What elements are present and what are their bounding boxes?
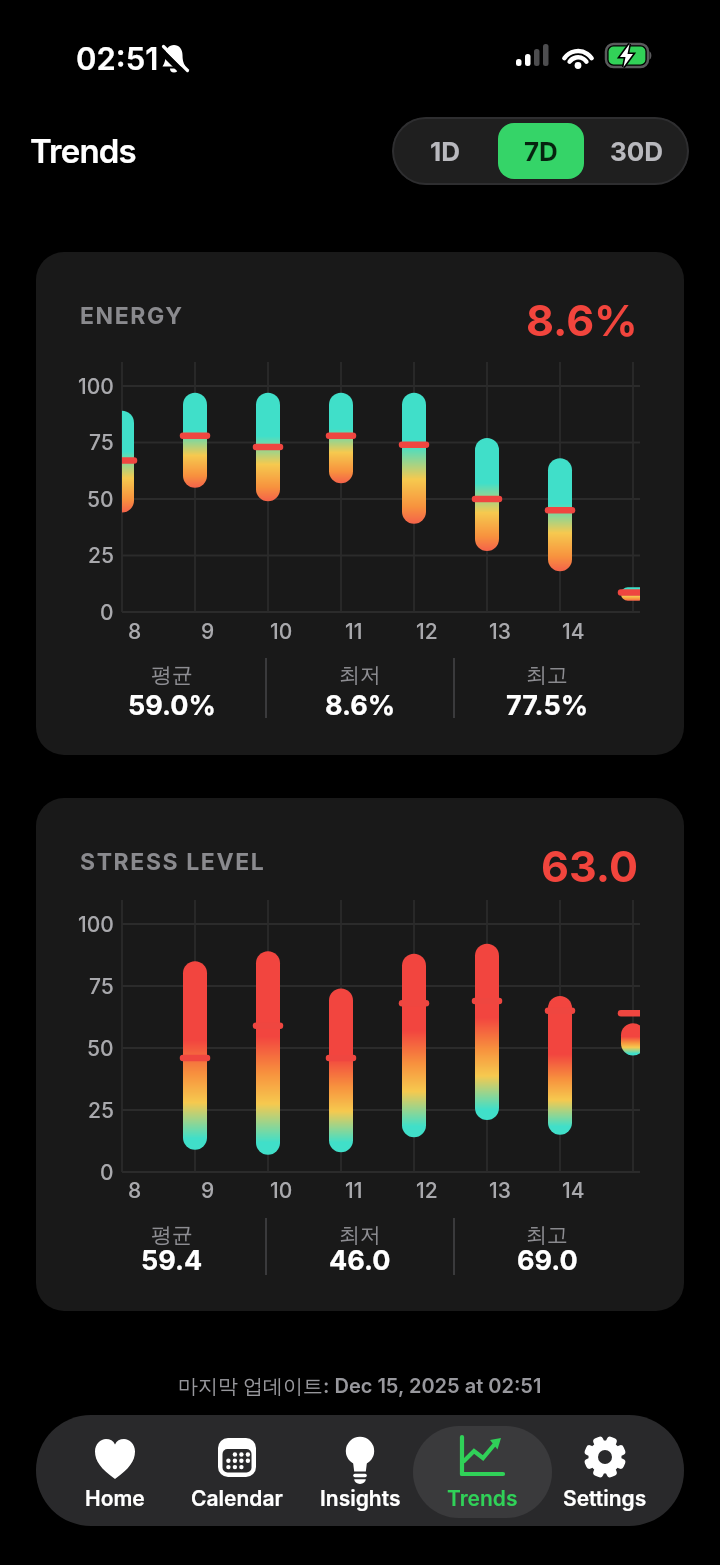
staticText: 12 (416, 1178, 438, 1203)
staticText: 10 (270, 1178, 293, 1203)
staticText: 69.0 (517, 1244, 578, 1274)
staticText: 최고 (526, 662, 568, 688)
staticText: Trends (447, 1486, 518, 1511)
staticText: 최고 (526, 1222, 568, 1248)
staticText: 0 (100, 600, 114, 625)
staticText: 46.0 (329, 1244, 391, 1274)
staticText: Trends (30, 131, 136, 171)
staticText: 8 (128, 619, 142, 644)
staticText: 14 (562, 1178, 585, 1203)
staticText: 7D (524, 136, 558, 167)
button[interactable]: Trends (421, 1415, 543, 1526)
button[interactable]: STRESS LEVEL (36, 798, 684, 1311)
staticText: 100 (78, 374, 114, 399)
staticText: 77.5% (506, 689, 589, 719)
staticText: 1D (430, 136, 460, 167)
button[interactable]: 7D (498, 123, 584, 179)
button[interactable]: Settings (544, 1415, 666, 1526)
staticText: 11 (345, 619, 363, 644)
staticText: 9 (201, 619, 215, 644)
staticText: 30D (610, 136, 664, 167)
staticText: 75 (89, 974, 114, 999)
staticText: 59.4 (141, 1244, 203, 1274)
staticText: 8.6% (526, 294, 638, 346)
button[interactable]: Home (54, 1415, 176, 1526)
staticText: 63.0 (541, 840, 638, 892)
staticText: STRESS LEVEL (80, 848, 266, 876)
staticText: 평균 (151, 1222, 193, 1248)
staticText: 75 (89, 430, 114, 455)
staticText: 평균 (151, 662, 193, 688)
staticText: 50 (87, 1036, 114, 1061)
button[interactable]: ENERGY (36, 252, 684, 755)
button[interactable]: 1D (392, 117, 498, 185)
staticText: ENERGY (80, 302, 184, 330)
staticText: 13 (489, 619, 511, 644)
staticText: 11 (345, 1178, 363, 1203)
staticText: 0 (100, 1160, 114, 1185)
staticText: 8.6% (325, 689, 396, 719)
staticText: 13 (489, 1178, 511, 1203)
staticText: 마지막 업데이트: Dec 15, 2025 at 02:51 (178, 1374, 542, 1399)
staticText: 14 (562, 619, 585, 644)
staticText: 8 (128, 1178, 142, 1203)
staticText: Calendar (191, 1486, 283, 1511)
staticText: 25 (88, 1098, 114, 1123)
staticText: 10 (270, 619, 293, 644)
button[interactable]: 30D (584, 117, 689, 185)
staticText: 최저 (339, 1222, 381, 1248)
staticText: Settings (563, 1486, 647, 1511)
staticText: Insights (320, 1486, 401, 1511)
staticText: 59.0% (128, 689, 216, 719)
button[interactable]: Insights (299, 1415, 421, 1526)
staticText: 25 (88, 543, 114, 568)
staticText: Home (85, 1486, 145, 1511)
staticText: 50 (87, 487, 114, 512)
staticText: 9 (201, 1178, 215, 1203)
staticText: 100 (78, 912, 114, 937)
staticText: 12 (416, 619, 438, 644)
staticText: 02:51 (76, 40, 159, 76)
button[interactable]: Calendar (176, 1415, 298, 1526)
staticText: 최저 (339, 662, 381, 688)
